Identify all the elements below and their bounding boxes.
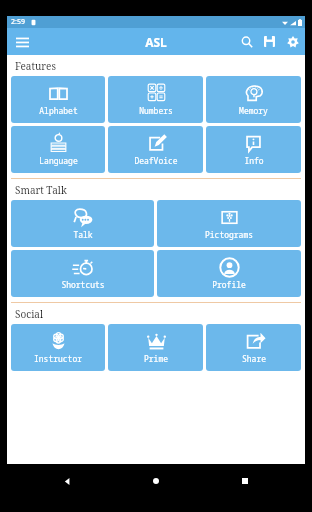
button[interactable]: Instructor — [11, 324, 105, 371]
button[interactable]: Back — [56, 470, 78, 492]
staticText: Pictograms — [205, 229, 253, 240]
button[interactable]: DeafVoice — [108, 126, 203, 173]
button[interactable]: Pictograms — [157, 200, 301, 247]
button[interactable]: Talk — [11, 200, 154, 247]
staticText: DeafVoice — [134, 155, 178, 166]
button[interactable]: Prime — [108, 324, 203, 371]
staticText: ASL — [145, 34, 167, 50]
staticText: Features — [15, 59, 56, 73]
button[interactable]: Info — [206, 126, 301, 173]
button[interactable]: Memory — [206, 76, 301, 123]
button[interactable]: Alphabet — [11, 76, 105, 123]
staticText: Instructor — [34, 353, 82, 364]
button[interactable]: Search — [237, 32, 256, 51]
button[interactable]: Profile — [157, 250, 301, 297]
staticText: 2:59 — [11, 17, 25, 27]
staticText: Smart Talk — [15, 183, 67, 197]
button[interactable]: Shortcuts — [11, 250, 154, 297]
button[interactable]: Home — [145, 470, 167, 492]
staticText: Prime — [144, 353, 168, 364]
staticText: Talk — [73, 229, 93, 240]
button[interactable]: Share — [206, 324, 301, 371]
staticText: Shortcuts — [61, 279, 105, 290]
button[interactable]: Save — [260, 32, 279, 51]
staticText: Alphabet — [39, 105, 78, 116]
button[interactable]: Language — [11, 126, 105, 173]
staticText: Social — [15, 307, 44, 321]
staticText: Numbers — [139, 105, 173, 116]
button[interactable]: Recents — [234, 470, 256, 492]
button[interactable]: Numbers — [108, 76, 203, 123]
staticText: Info — [244, 155, 264, 166]
staticText: Share — [242, 353, 266, 364]
button[interactable]: Settings — [283, 32, 302, 51]
staticText: Language — [39, 155, 78, 166]
staticText: Profile — [212, 279, 246, 290]
staticText: Memory — [239, 105, 268, 116]
button[interactable]: Menu — [10, 30, 34, 54]
